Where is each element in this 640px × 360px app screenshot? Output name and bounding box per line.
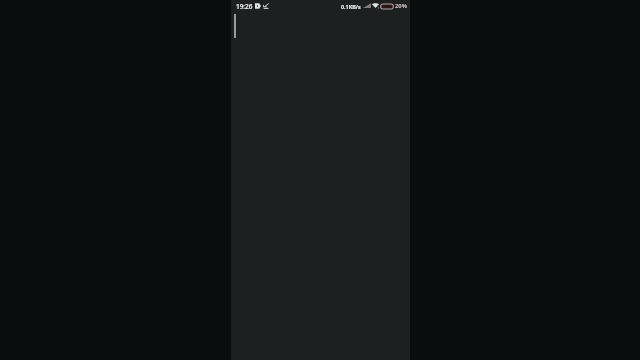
other: Wi-Fi (372, 3, 379, 9)
button[interactable]: Screen recording (255, 3, 261, 9)
other: Battery 20 percent (380, 3, 394, 10)
other: Mobile signal (363, 3, 371, 9)
staticText: 0.1KB/s (341, 3, 361, 10)
button[interactable]: 19:26 (231, 0, 410, 360)
button[interactable]: Screenshot (263, 3, 269, 9)
staticText: 19:26 (236, 2, 253, 11)
staticText: 20% (395, 2, 407, 10)
